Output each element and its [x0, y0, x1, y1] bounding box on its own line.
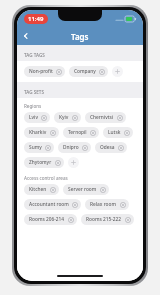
staticText: Kharkiv — [29, 129, 47, 136]
staticText: Lviv — [29, 114, 38, 121]
other: Remove Rooms 215-222 — [125, 217, 131, 223]
staticText: Lutsk — [108, 129, 121, 136]
other: Remove Lutsk — [124, 130, 130, 136]
staticText: Regions — [24, 103, 42, 109]
staticText: Rooms 215-222 — [86, 216, 122, 223]
staticText: Zhytomyr — [29, 159, 52, 166]
button[interactable]: Accountant room — [24, 199, 81, 210]
button[interactable]: Kharkiv — [24, 127, 59, 138]
button[interactable]: Relax room — [85, 199, 129, 210]
other: Remove Dnipro — [82, 145, 88, 151]
button[interactable]: Back — [17, 27, 35, 45]
other: Remove Odesa — [118, 145, 124, 151]
staticText: Ternopil — [68, 129, 87, 136]
staticText: Rooms 206-214 — [29, 216, 65, 223]
staticText: Tags — [71, 31, 89, 42]
other: Remove Kharkiv — [50, 130, 56, 136]
staticText: Dnipro — [63, 144, 79, 151]
staticText: TAG TAGS — [24, 52, 45, 58]
button[interactable]: Ternopil — [63, 127, 99, 138]
button[interactable]: Dnipro — [58, 142, 91, 153]
staticText: Non-profit — [29, 68, 53, 75]
staticText: Accountant room — [29, 201, 69, 208]
button[interactable]: Chernivtsi — [85, 112, 126, 123]
button[interactable]: Add tag — [68, 157, 79, 168]
button[interactable]: Company — [69, 66, 108, 77]
button[interactable]: Lviv — [24, 112, 50, 123]
staticText: Access control areas — [24, 175, 68, 181]
button[interactable]: Sumy — [24, 142, 54, 153]
button[interactable]: Kyiv — [54, 112, 81, 123]
button[interactable]: Rooms 215-222 — [81, 214, 134, 225]
staticText: Odesa — [100, 144, 115, 151]
button[interactable]: Server room — [63, 184, 109, 195]
other: Remove Ternopil — [90, 130, 96, 136]
other: Remove Server room — [100, 187, 106, 193]
staticText: TAG SETS — [24, 89, 44, 95]
staticText: Sumy — [29, 144, 42, 151]
other: Remove Lviv — [41, 115, 47, 121]
button[interactable]: Kitchen — [24, 184, 59, 195]
button[interactable]: Zhytomyr — [24, 157, 64, 168]
other: Remove Rooms 206-214 — [68, 217, 74, 223]
staticText: Company — [74, 68, 96, 75]
staticText: Server room — [68, 186, 97, 193]
button[interactable]: Non-profit — [24, 66, 65, 77]
staticText: Chernivtsi — [90, 114, 114, 121]
button[interactable]: Rooms 206-214 — [24, 214, 77, 225]
staticText: 11:49 — [28, 15, 44, 23]
other: Remove Accountant room — [72, 202, 78, 208]
button[interactable]: Odesa — [95, 142, 127, 153]
other: Remove Kyiv — [72, 115, 78, 121]
other: Remove Chernivtsi — [117, 115, 123, 121]
staticText: Relax room — [90, 201, 117, 208]
other: Remove Kitchen — [50, 187, 56, 193]
other: Remove Relax room — [120, 202, 126, 208]
other: Remove Sumy — [45, 145, 51, 151]
button[interactable]: Add tag — [112, 66, 123, 77]
other: Remove Zhytomyr — [55, 160, 61, 166]
staticText: Kyiv — [59, 114, 69, 121]
button[interactable]: Lutsk — [103, 127, 133, 138]
other: Remove Company — [99, 69, 105, 75]
staticText: Kitchen — [29, 186, 47, 193]
other: Remove Non-profit — [56, 69, 62, 75]
